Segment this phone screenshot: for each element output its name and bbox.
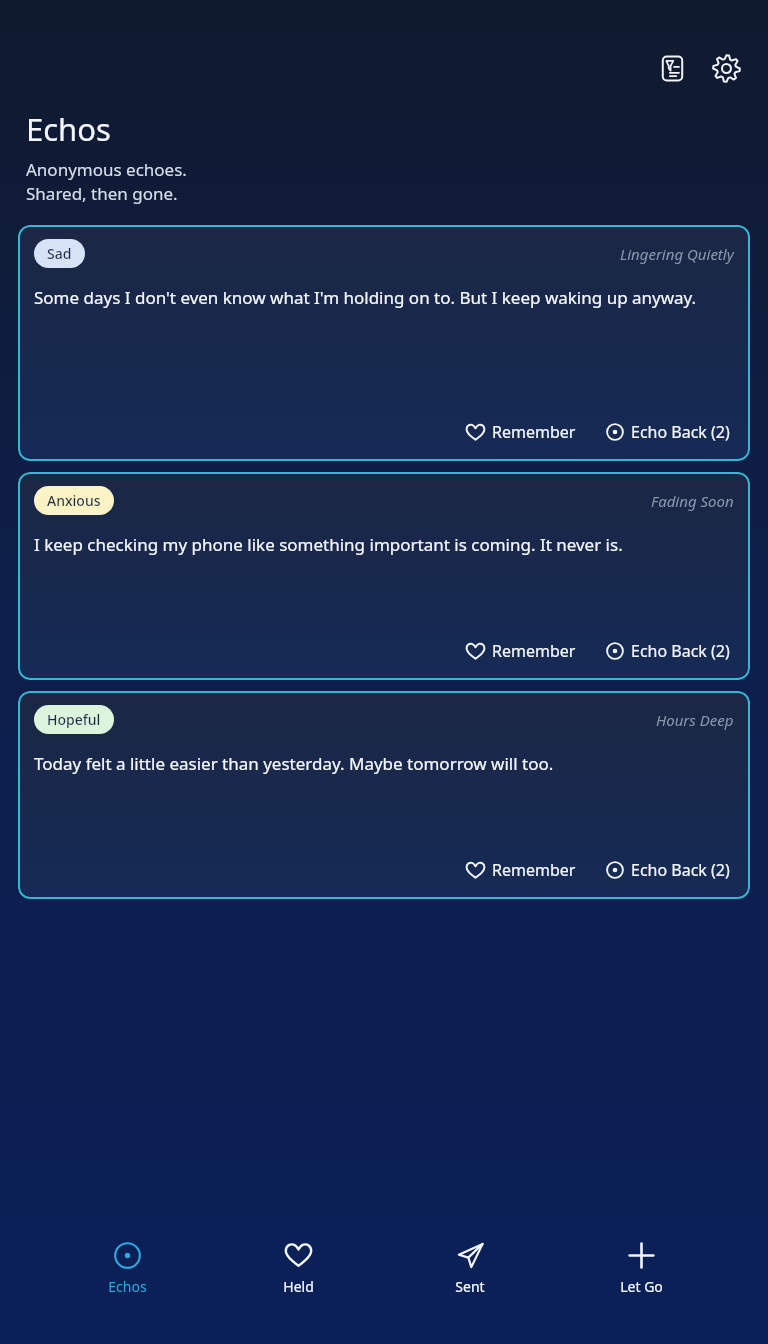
staticText: Today felt a little easier than yesterda… xyxy=(34,752,554,775)
button[interactable]: Echo Back (2) xyxy=(602,417,734,447)
button[interactable]: Hopeful xyxy=(18,691,750,899)
staticText: Held xyxy=(283,1277,314,1296)
button[interactable]: Remember xyxy=(462,417,580,447)
button[interactable]: Remember xyxy=(462,855,580,885)
staticText: Let Go xyxy=(620,1277,663,1296)
staticText: Echo Back (2) xyxy=(631,421,730,443)
button[interactable]: Anxious xyxy=(18,472,750,680)
staticText: Lingering Quietly xyxy=(620,244,734,264)
staticText: Echos xyxy=(26,108,111,150)
button[interactable]: Echo Back (2) xyxy=(602,855,734,885)
staticText: Anxious xyxy=(47,491,101,510)
button[interactable]: Settings xyxy=(704,46,748,90)
button[interactable]: Echos xyxy=(77,1228,177,1304)
staticText: Echo Back (2) xyxy=(631,859,730,881)
staticText: Hours Deep xyxy=(656,710,734,730)
button[interactable]: Compose note xyxy=(650,46,694,90)
button[interactable]: Echo Back (2) xyxy=(602,636,734,666)
staticText: Sent xyxy=(455,1277,485,1296)
button[interactable]: Sent xyxy=(420,1228,520,1304)
button[interactable]: Let Go xyxy=(591,1228,691,1304)
staticText: Remember xyxy=(492,640,576,662)
staticText: Anonymous echoes. Shared, then gone. xyxy=(26,158,187,205)
button[interactable]: Remember xyxy=(462,636,580,666)
staticText: Echo Back (2) xyxy=(631,640,730,662)
staticText: Fading Soon xyxy=(651,491,734,511)
staticText: Hopeful xyxy=(47,710,101,729)
staticText: Remember xyxy=(492,421,576,443)
staticText: Echos xyxy=(108,1277,147,1296)
staticText: I keep checking my phone like something … xyxy=(34,533,623,556)
button[interactable]: Held xyxy=(248,1228,348,1304)
staticText: Remember xyxy=(492,859,576,881)
staticText: Some days I don't even know what I'm hol… xyxy=(34,286,697,309)
staticText: Sad xyxy=(47,244,72,263)
button[interactable]: Sad xyxy=(18,225,750,461)
